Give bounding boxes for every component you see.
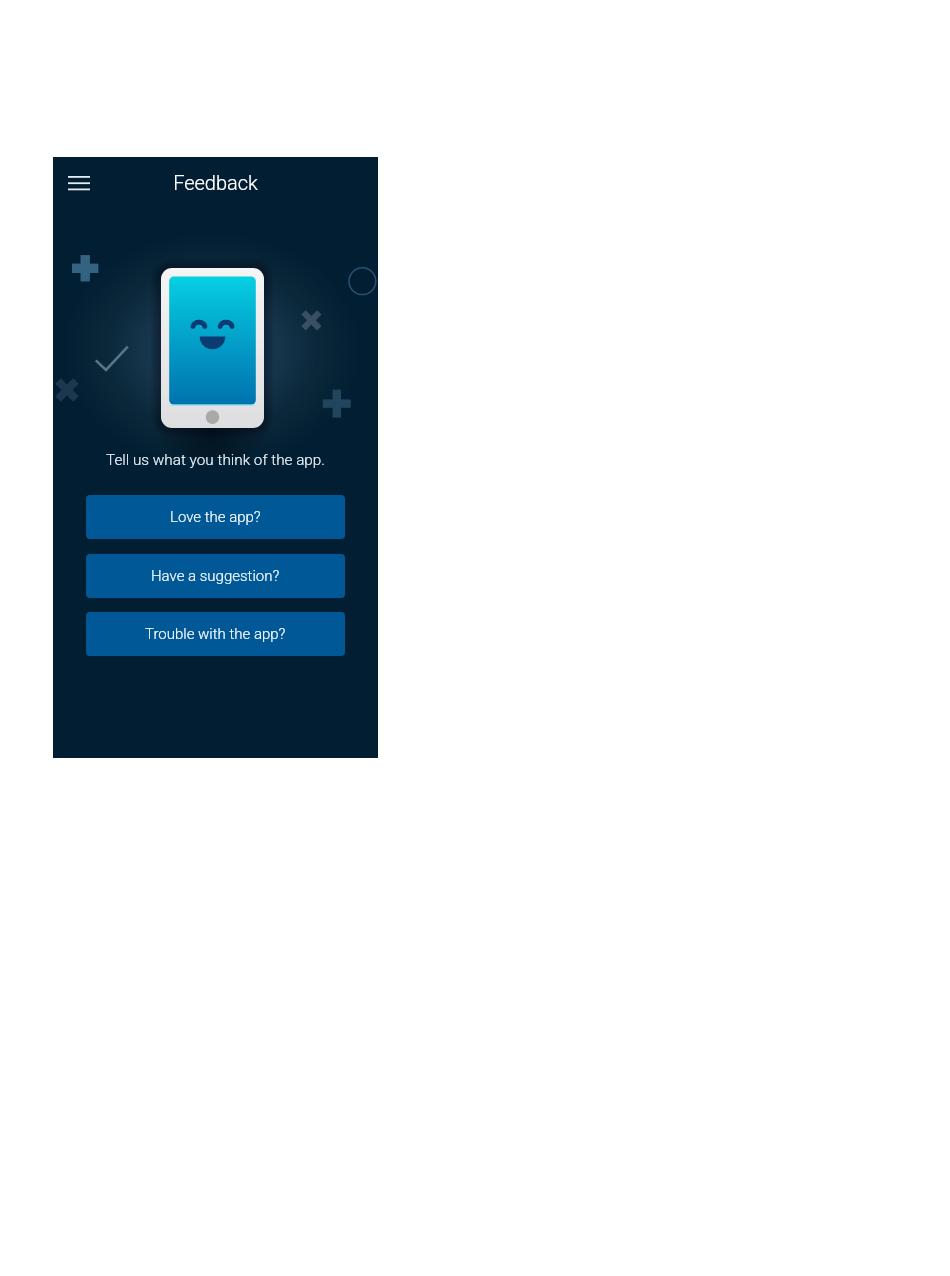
staticText: Trouble with the app? — [145, 625, 286, 643]
staticText: Have a suggestion? — [151, 567, 280, 585]
staticText: Tell us what you think of the app. — [53, 451, 378, 469]
staticText: Love the app? — [170, 508, 261, 526]
staticText: Feedback — [53, 171, 378, 194]
button[interactable]: Have a suggestion? — [86, 554, 345, 598]
button[interactable]: Trouble with the app? — [86, 612, 345, 656]
button[interactable]: Love the app? — [86, 495, 345, 539]
button[interactable]: Open navigation menu — [58, 162, 100, 204]
